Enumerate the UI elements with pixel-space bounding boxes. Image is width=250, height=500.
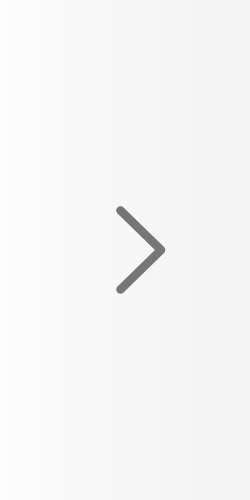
button[interactable]: Next (0, 0, 250, 500)
